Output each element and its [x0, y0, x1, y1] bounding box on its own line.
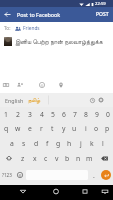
button[interactable]: p [102, 121, 113, 135]
button[interactable]: o [91, 121, 102, 135]
button[interactable]: g [53, 136, 64, 150]
button[interactable]: w [12, 121, 24, 135]
button[interactable]: Shift [0, 151, 17, 165]
staticText: p [105, 124, 110, 133]
staticText: b [65, 154, 70, 163]
staticText: j [80, 139, 82, 148]
staticText: a [10, 139, 14, 148]
button[interactable]: l [97, 136, 108, 150]
button[interactable]: m [84, 151, 95, 165]
staticText: POST [96, 11, 109, 18]
button[interactable]: ?123 [0, 168, 14, 182]
button[interactable]: 0 [102, 107, 113, 121]
staticText: s [22, 139, 26, 148]
button[interactable]: f [42, 136, 53, 150]
staticText: k [90, 139, 94, 148]
staticText: . [93, 171, 95, 180]
button[interactable]: y [58, 121, 69, 135]
button[interactable]: v [51, 151, 62, 165]
staticText: 5 [51, 110, 55, 119]
button[interactable]: q [0, 121, 12, 135]
button[interactable]: Back [0, 7, 15, 22]
button[interactable]: k [86, 136, 97, 150]
button[interactable]: POST [92, 7, 113, 22]
staticText: d [34, 139, 39, 148]
button[interactable]: Photo [0, 78, 11, 91]
staticText: w [15, 124, 21, 133]
button[interactable]: Friends [15, 25, 40, 32]
button[interactable]: d [30, 136, 42, 150]
button[interactable]: 1 [0, 107, 12, 121]
button[interactable]: z [17, 151, 29, 165]
button[interactable]: 5 [47, 107, 58, 121]
staticText: 0 [106, 110, 110, 119]
button[interactable]: Back [16, 185, 29, 198]
button[interactable]: 3 [24, 107, 36, 121]
button[interactable]: Backspace [95, 151, 113, 165]
button[interactable]: 2 [12, 107, 24, 121]
button[interactable]: t [47, 121, 58, 135]
button[interactable]: Feeling / activity [36, 78, 47, 91]
staticText: 22:59 [95, 1, 106, 7]
button[interactable]: Hide keyboard [98, 185, 111, 198]
staticText: 8 [84, 110, 88, 119]
button[interactable]: i [80, 121, 91, 135]
staticText: z [21, 154, 25, 163]
staticText: 1 [4, 110, 8, 119]
staticText: m [86, 154, 93, 163]
staticText: i [85, 124, 87, 133]
button[interactable]: Settings [95, 93, 107, 107]
staticText: English [5, 97, 24, 104]
button[interactable]: Home [49, 185, 62, 198]
button[interactable]: j [75, 136, 86, 150]
staticText: o [94, 124, 99, 133]
staticText: f [46, 139, 49, 148]
button[interactable]: Tag people [14, 78, 25, 91]
staticText: 7 [73, 110, 77, 119]
button[interactable]: 9 [91, 107, 102, 121]
button[interactable]: n [73, 151, 84, 165]
staticText: Friends [23, 25, 40, 32]
button[interactable]: Send [99, 168, 113, 182]
staticText: Post to Facebook [17, 11, 61, 18]
button[interactable]: Recent apps [78, 185, 91, 198]
staticText: 6 [62, 110, 66, 119]
staticText: To: [4, 25, 11, 32]
button[interactable]: c [40, 151, 51, 165]
button[interactable]: English [5, 93, 24, 107]
button[interactable]: h [64, 136, 75, 150]
button[interactable]: 8 [80, 107, 91, 121]
staticText: தமிழ் [28, 98, 41, 103]
button[interactable]: . [89, 168, 99, 182]
staticText: h [67, 139, 72, 148]
button[interactable]: 7 [69, 107, 80, 121]
staticText: 4 [40, 110, 44, 119]
staticText: l [102, 139, 104, 148]
staticText: e [28, 124, 32, 133]
button[interactable]: Emoji [14, 168, 25, 182]
staticText: 9 [95, 110, 99, 119]
button[interactable]: 4 [36, 107, 47, 121]
staticText: n [76, 154, 81, 163]
staticText: ?123 [2, 172, 12, 178]
button[interactable]: 6 [58, 107, 69, 121]
button[interactable]: தமிழ் [28, 93, 41, 107]
button[interactable]: x [29, 151, 40, 165]
staticText: v [55, 154, 59, 163]
staticText: 2 [16, 110, 20, 119]
button[interactable]: b [62, 151, 73, 165]
button[interactable]: Check in [55, 78, 66, 91]
staticText: q [4, 124, 9, 133]
button[interactable]: Recent [86, 93, 98, 107]
staticText: y [62, 124, 66, 133]
staticText: g [56, 139, 61, 148]
button[interactable]: e [24, 121, 36, 135]
button[interactable]: r [36, 121, 47, 135]
button[interactable]: u [69, 121, 80, 135]
staticText: t [51, 124, 54, 133]
button[interactable]: s [18, 136, 30, 150]
staticText: c [44, 154, 48, 163]
button[interactable]: a [6, 136, 18, 150]
staticText: x [33, 154, 37, 163]
